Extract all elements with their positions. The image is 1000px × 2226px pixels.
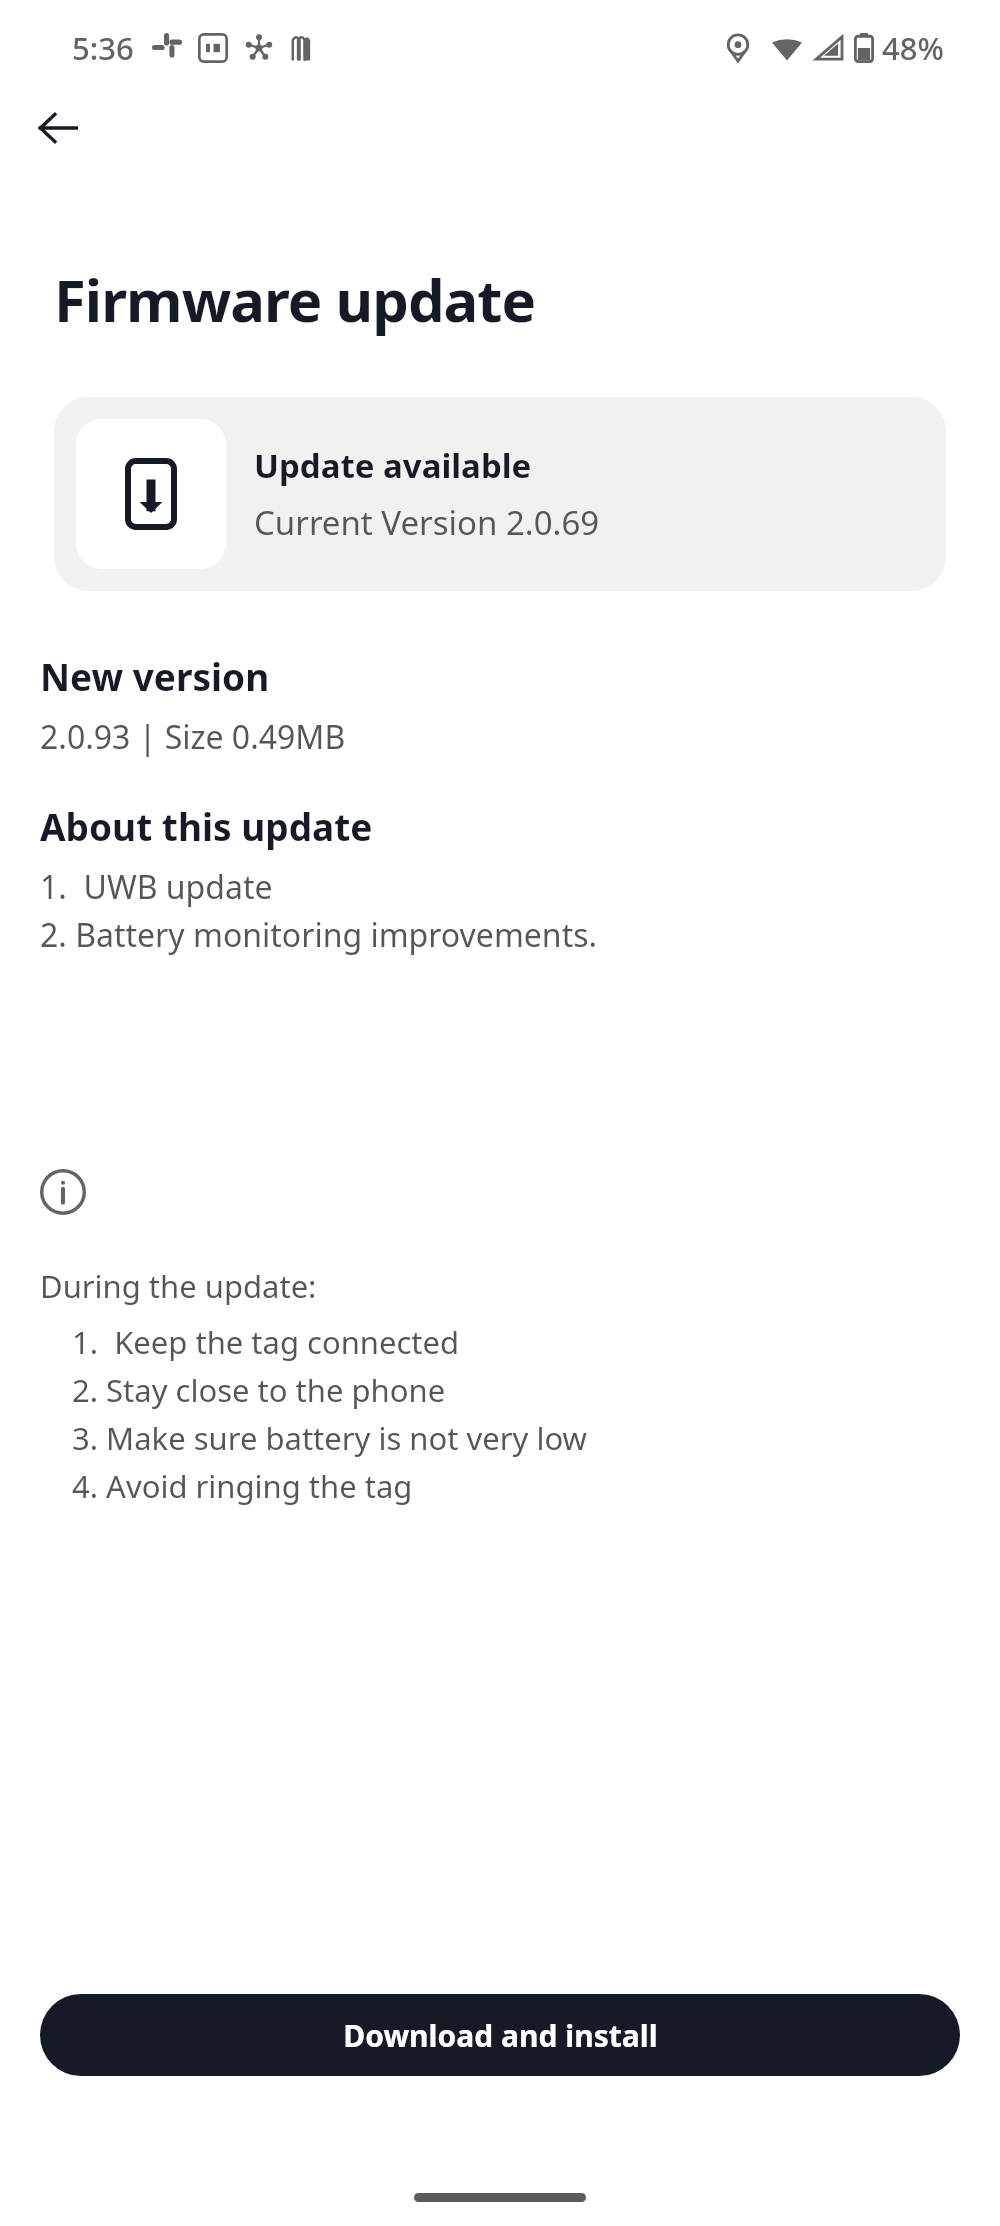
staticText: 1. Keep the tag connected (72, 1321, 460, 1363)
staticText: Firmware update (54, 260, 536, 339)
button[interactable]: Download and install (40, 1994, 960, 2076)
staticText: 5:36 (72, 27, 134, 69)
other: Information (40, 1169, 86, 1215)
staticText: 4. Avoid ringing the tag (72, 1465, 413, 1507)
staticText: 1. UWB update (40, 865, 273, 909)
staticText: 2. Battery monitoring improvements. (40, 913, 598, 957)
staticText: 2.0.93 | Size 0.49MB (40, 715, 346, 759)
button[interactable]: Back (26, 96, 90, 160)
staticText: Download and install (343, 2015, 658, 2056)
staticText: 48% (882, 27, 944, 69)
button[interactable]: Update available (54, 397, 946, 591)
staticText: 3. Make sure battery is not very low (72, 1417, 587, 1459)
staticText: Current Version 2.0.69 (254, 500, 600, 545)
staticText: New version (40, 651, 270, 701)
staticText: During the update: (40, 1265, 317, 1307)
staticText: About this update (40, 801, 373, 851)
staticText: 2. Stay close to the phone (72, 1369, 446, 1411)
staticText: Update available (254, 443, 532, 488)
